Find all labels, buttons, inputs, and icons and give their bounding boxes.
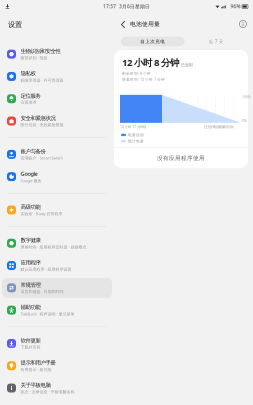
staticText: 默认应用程序 · 应用程序设置 (20, 266, 71, 272)
staticText: 17:37 3月6日星期日 (103, 3, 150, 10)
button[interactable]: 常规管理 (0, 277, 114, 299)
button[interactable]: 返回 (118, 18, 129, 29)
staticText: 剩余时间: 6 小时 (122, 71, 151, 76)
button[interactable]: 生物识别和安全性 (0, 43, 114, 65)
staticText: 没有应用程序使用 (157, 155, 205, 162)
staticText: 权限管理器 · 许可管理器 (20, 77, 63, 83)
staticText: 管理账户 · Smart Switch (20, 155, 62, 161)
staticText: 安全和紧急状况 (20, 115, 55, 121)
button[interactable]: 数字健康 (0, 232, 114, 254)
staticText: 12 小时 17 分钟前 (120, 124, 146, 129)
staticText: 100% (242, 95, 251, 99)
staticText: 电量使用 (128, 133, 144, 137)
staticText: 关于平板电脑 (20, 382, 50, 388)
button[interactable]: 定位服务 (0, 88, 114, 110)
staticText: 已使用 (180, 62, 192, 68)
button[interactable]: 信息 (239, 20, 246, 27)
staticText: 96% (230, 3, 240, 10)
staticText: 过去的电池电量百分比 (204, 124, 234, 129)
staticText: 语言和键盘 · 日期和时间 (20, 289, 63, 294)
staticText: 下载并安装 (20, 345, 40, 350)
staticText: 设置 (8, 20, 22, 29)
button[interactable]: 软件更新 (0, 332, 114, 355)
staticText: 医疗信息 · 无线紧急警报 (20, 122, 63, 127)
staticText: 0% (242, 119, 247, 123)
staticText: 数字健康 (20, 237, 40, 244)
staticText: 常规管理 (20, 281, 40, 288)
staticText: 预计电量 (128, 139, 144, 143)
staticText: 屏幕时间 · 应用程序定时器 · 就寝模式 (20, 244, 86, 250)
button[interactable]: 高级功能 (0, 199, 114, 221)
staticText: 高级功能 (20, 203, 40, 210)
staticText: 定位服务 (20, 92, 40, 99)
staticText: 辅助功能 (20, 304, 40, 311)
staticText: 位置请求 (20, 100, 36, 105)
staticText: 电池使用量 (130, 20, 160, 28)
button[interactable]: 提示和用户手册 (0, 355, 114, 377)
staticText: 软件更新 (20, 337, 40, 344)
staticText: 应用程序 (20, 259, 40, 266)
button[interactable]: 关于平板电脑 (0, 377, 114, 399)
staticText: 实验室 · Bixby 日常程序 (20, 211, 62, 216)
staticText: 12 小时 8 分钟 (122, 56, 179, 69)
staticText: 提示和用户手册 (20, 359, 55, 366)
staticText: 有用提示 · 新功能 (20, 367, 51, 372)
staticText: Google (20, 170, 37, 177)
staticText: 账户与备份 (20, 148, 45, 155)
button[interactable]: 辅助功能 (0, 299, 114, 321)
button[interactable]: 近 7 天 (184, 37, 248, 46)
staticText: 面部识别 · 指纹 (20, 55, 47, 60)
staticText: 状态 · 法律信息 · 平板电脑名称 (20, 389, 74, 394)
staticText: 生物识别和安全性 (20, 48, 60, 55)
button[interactable]: 隐私权 (0, 65, 114, 88)
button[interactable]: 安全和紧急状况 (0, 110, 114, 132)
staticText: 自上次充电 (140, 39, 165, 44)
button[interactable]: Google (0, 165, 114, 188)
staticText: TalkBack · 有声说明 · 显示菜单 (20, 311, 74, 317)
staticText: 近 7 天 (209, 38, 224, 45)
staticText: 屏幕时间: 12 小时 7 分钟 (122, 77, 165, 82)
staticText: 隐私权 (20, 70, 35, 77)
button[interactable]: 自上次充电 (121, 37, 184, 46)
button[interactable]: 应用程序 (0, 254, 114, 277)
button[interactable]: 账户与备份 (0, 143, 114, 165)
staticText: Google 服务 (20, 178, 41, 183)
